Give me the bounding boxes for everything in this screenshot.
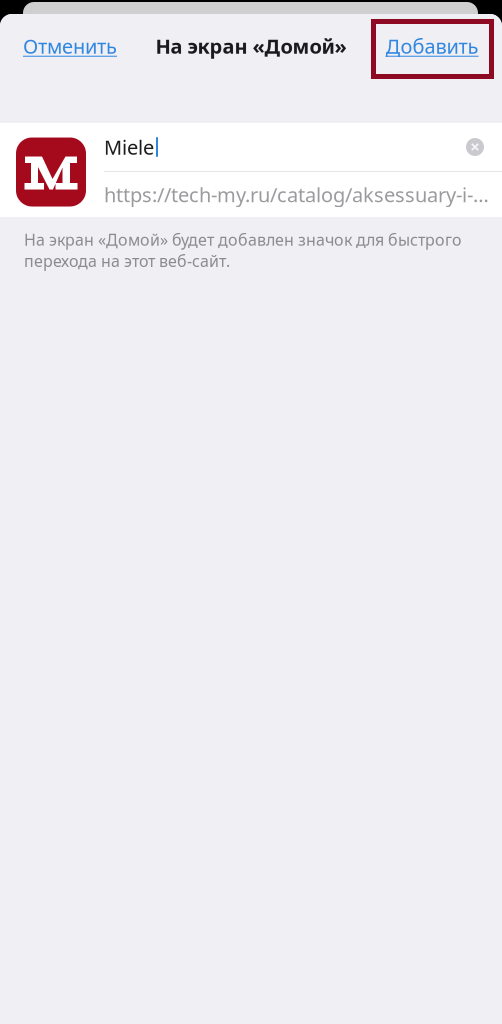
staticText: На экран «Домой» будет добавлен значок д… bbox=[24, 229, 462, 271]
staticText: https://tech-my.ru/catalog/aksessuary-i-… bbox=[104, 181, 489, 208]
button[interactable]: Добавить bbox=[376, 18, 494, 73]
staticText: Отменить bbox=[23, 33, 117, 59]
button[interactable]: Clear text bbox=[460, 132, 490, 162]
button[interactable]: Отменить bbox=[15, 16, 125, 76]
staticText: Miele bbox=[104, 134, 154, 160]
staticText: Добавить bbox=[385, 33, 478, 59]
staticText: На экран «Домой» bbox=[155, 33, 346, 59]
